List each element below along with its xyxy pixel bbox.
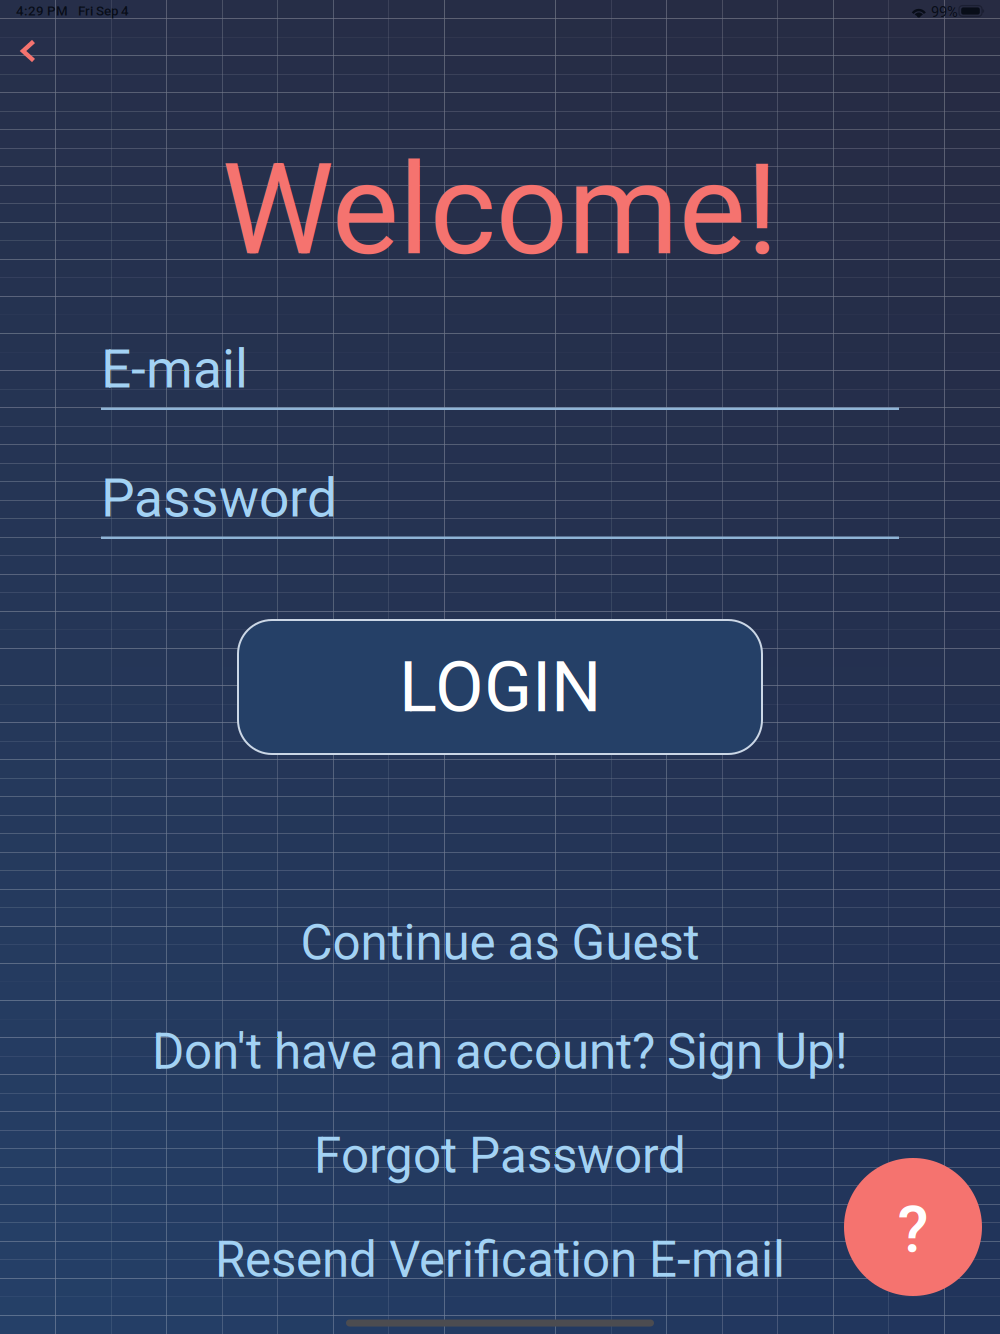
button[interactable]: Help [844,1158,982,1296]
staticText: Welcome! [221,136,778,284]
staticText: 99% [931,3,958,21]
staticText: Continue as Guest [300,914,699,972]
staticText: ? [897,1192,928,1267]
button[interactable]: Back [0,18,64,84]
staticText: 4:29 PM [16,3,68,19]
staticText: Don't have an account? Sign Up! [152,1023,848,1081]
staticText: Resend Verification E-mail [215,1231,785,1289]
button[interactable]: Forgot Password [90,1110,910,1202]
staticText: Forgot Password [314,1127,686,1185]
staticText: Fri Sep 4 [78,3,129,19]
staticText: LOGIN [399,646,601,728]
button[interactable]: Resend Verification E-mail [90,1214,910,1306]
button[interactable]: Don't have an account? Sign Up! [90,1006,910,1098]
staticText: E-mail [101,338,248,400]
button[interactable]: LOGIN [238,620,762,754]
button[interactable]: Continue as Guest [90,897,910,989]
staticText: Password [101,467,337,529]
